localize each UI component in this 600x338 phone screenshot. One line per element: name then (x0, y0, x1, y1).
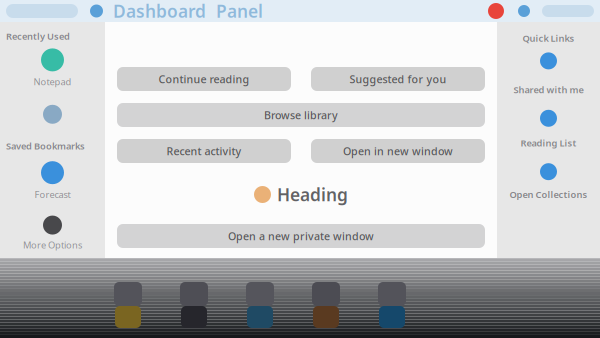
button[interactable]: App (246, 282, 274, 328)
button[interactable]: Recent activity (117, 139, 291, 163)
button[interactable] (497, 110, 600, 127)
button[interactable]: Record (488, 3, 504, 19)
button[interactable]: Menu (542, 5, 594, 17)
button[interactable]: More Options (0, 216, 105, 251)
staticText: Open a new private window (228, 229, 374, 243)
staticText: Forecast (34, 188, 70, 201)
button[interactable]: Open in new window (311, 139, 485, 163)
staticText: Recently Used (6, 30, 70, 42)
staticText: Reading List (520, 137, 576, 149)
staticText: Saved Bookmarks (6, 140, 85, 152)
button[interactable]: Continue reading (117, 67, 291, 91)
staticText: Suggested for you (349, 72, 446, 86)
staticText: Shared with me (513, 83, 583, 96)
button[interactable]: Account (518, 5, 530, 17)
button[interactable] (497, 52, 600, 69)
button[interactable]: App (312, 282, 340, 328)
staticText: Heading (277, 183, 348, 206)
button[interactable]: App (378, 282, 406, 328)
button[interactable]: Forecast (0, 161, 105, 201)
staticText: Notepad (33, 75, 71, 88)
button[interactable]: Notepad (0, 48, 105, 88)
button[interactable]: New tab (90, 4, 103, 17)
button[interactable]: Tab (6, 4, 78, 18)
staticText: Continue reading (158, 72, 249, 86)
button[interactable]: App (114, 282, 142, 328)
button[interactable]: App (180, 282, 208, 328)
button[interactable] (497, 163, 600, 180)
button[interactable]: Suggested for you (311, 67, 485, 91)
staticText: Quick Links (522, 32, 574, 44)
staticText: Dashboard Panel (113, 0, 263, 22)
staticText: More Options (23, 239, 82, 251)
button[interactable]: Open a new private window (117, 224, 485, 248)
staticText: Browse library (264, 108, 338, 122)
staticText: Open Collections (509, 188, 587, 201)
button[interactable] (0, 105, 105, 124)
button[interactable]: Browse library (117, 103, 485, 127)
button[interactable]: Dashboard Panel (113, 0, 263, 22)
staticText: Open in new window (343, 144, 453, 158)
staticText: Recent activity (166, 144, 241, 158)
